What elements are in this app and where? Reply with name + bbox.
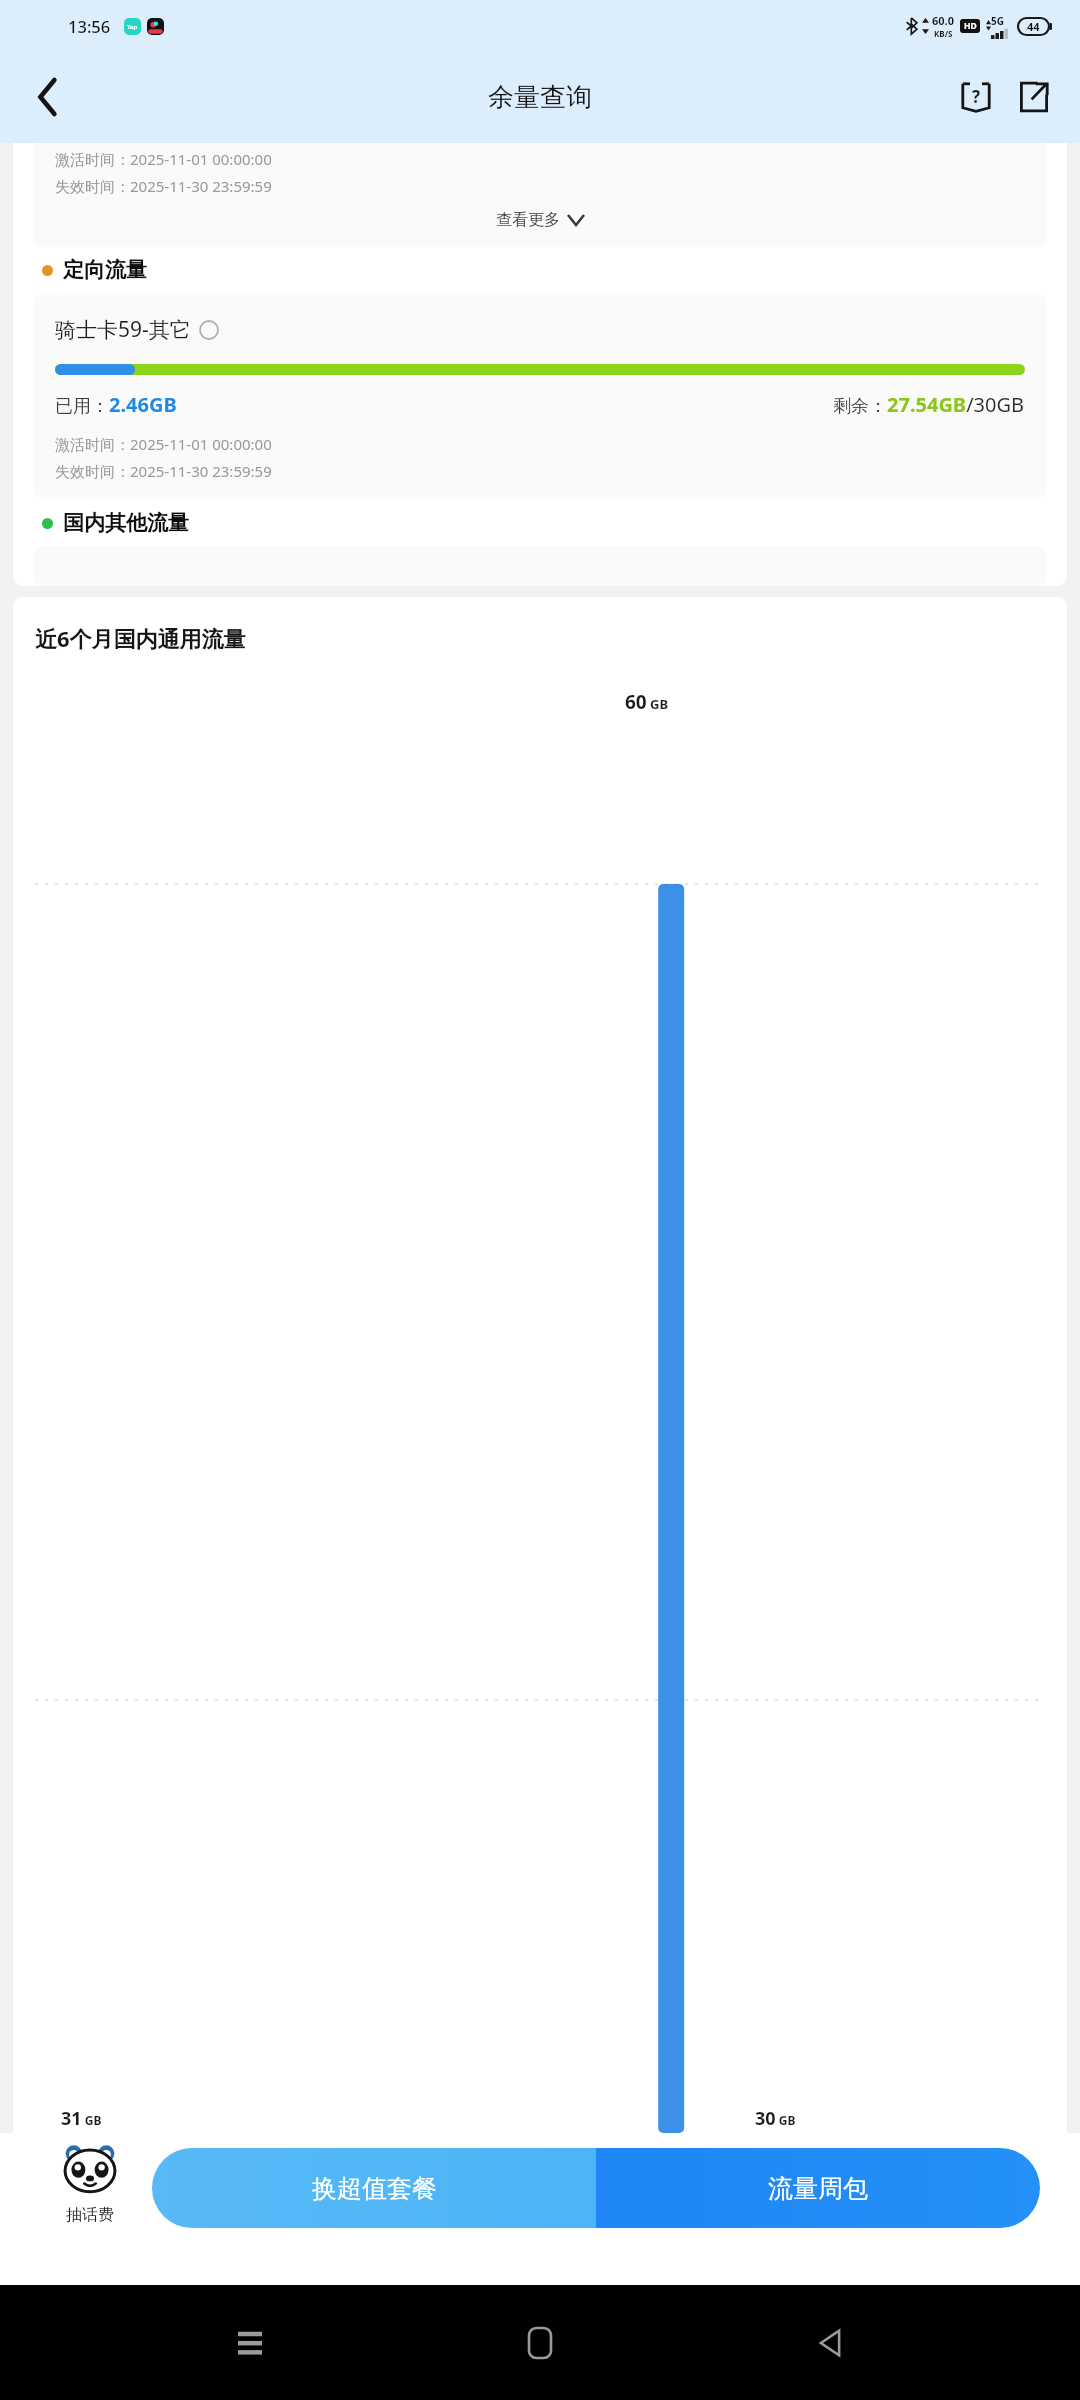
staticText: 剩余：27.54GB/30GB bbox=[833, 391, 1025, 418]
button[interactable]: Recents bbox=[210, 2303, 290, 2383]
staticText: 骑士卡59-其它 bbox=[55, 315, 191, 344]
staticText: 抽话费 bbox=[66, 2205, 114, 2225]
staticText: 换超值套餐 bbox=[312, 2173, 437, 2204]
button[interactable]: Share bbox=[1010, 73, 1058, 121]
staticText: 近6个月国内通用流量 bbox=[35, 623, 246, 653]
staticText: 31 GB bbox=[61, 2106, 102, 2131]
button[interactable]: 换超值套餐 bbox=[152, 2148, 596, 2228]
staticText: 5G bbox=[991, 14, 1004, 28]
button[interactable]: 流量周包 bbox=[596, 2148, 1040, 2228]
staticText: 激活时间：2025-11-01 00:00:00 bbox=[55, 434, 272, 454]
staticText: 13:56 bbox=[68, 15, 111, 37]
staticText: 44 bbox=[1027, 19, 1040, 34]
staticText: 流量周包 bbox=[768, 2173, 868, 2204]
staticText: ? bbox=[972, 85, 981, 108]
button[interactable]: Back bbox=[790, 2303, 870, 2383]
button[interactable]: 抽话费 bbox=[42, 2143, 138, 2225]
staticText: KB/S bbox=[934, 28, 953, 39]
staticText: 30 GB bbox=[755, 2106, 796, 2131]
button[interactable]: 激活时间：2025-11-01 00:00:00 bbox=[33, 143, 1047, 247]
staticText: 激活时间：2025-11-01 00:00:00 bbox=[55, 149, 272, 169]
staticText: Tap bbox=[127, 23, 138, 31]
staticText: 查看更多 bbox=[496, 210, 560, 230]
staticText: 国内其他流量 bbox=[63, 510, 189, 536]
button[interactable]: 骑士卡59-其它 bbox=[33, 293, 1047, 499]
staticText: 定向流量 bbox=[63, 257, 147, 283]
staticText: HD bbox=[964, 20, 977, 32]
staticText: 失效时间：2025-11-30 23:59:59 bbox=[55, 176, 272, 196]
staticText: 失效时间：2025-11-30 23:59:59 bbox=[55, 461, 272, 481]
button[interactable]: Back bbox=[22, 71, 74, 123]
button[interactable]: Home bbox=[500, 2303, 580, 2383]
staticText: 余量查询 bbox=[488, 81, 592, 114]
staticText: 60 GB bbox=[625, 689, 669, 715]
staticText: 60.0 bbox=[932, 13, 954, 28]
staticText: 已用：2.46GB bbox=[55, 391, 177, 418]
button[interactable]: Help bbox=[952, 73, 1000, 121]
